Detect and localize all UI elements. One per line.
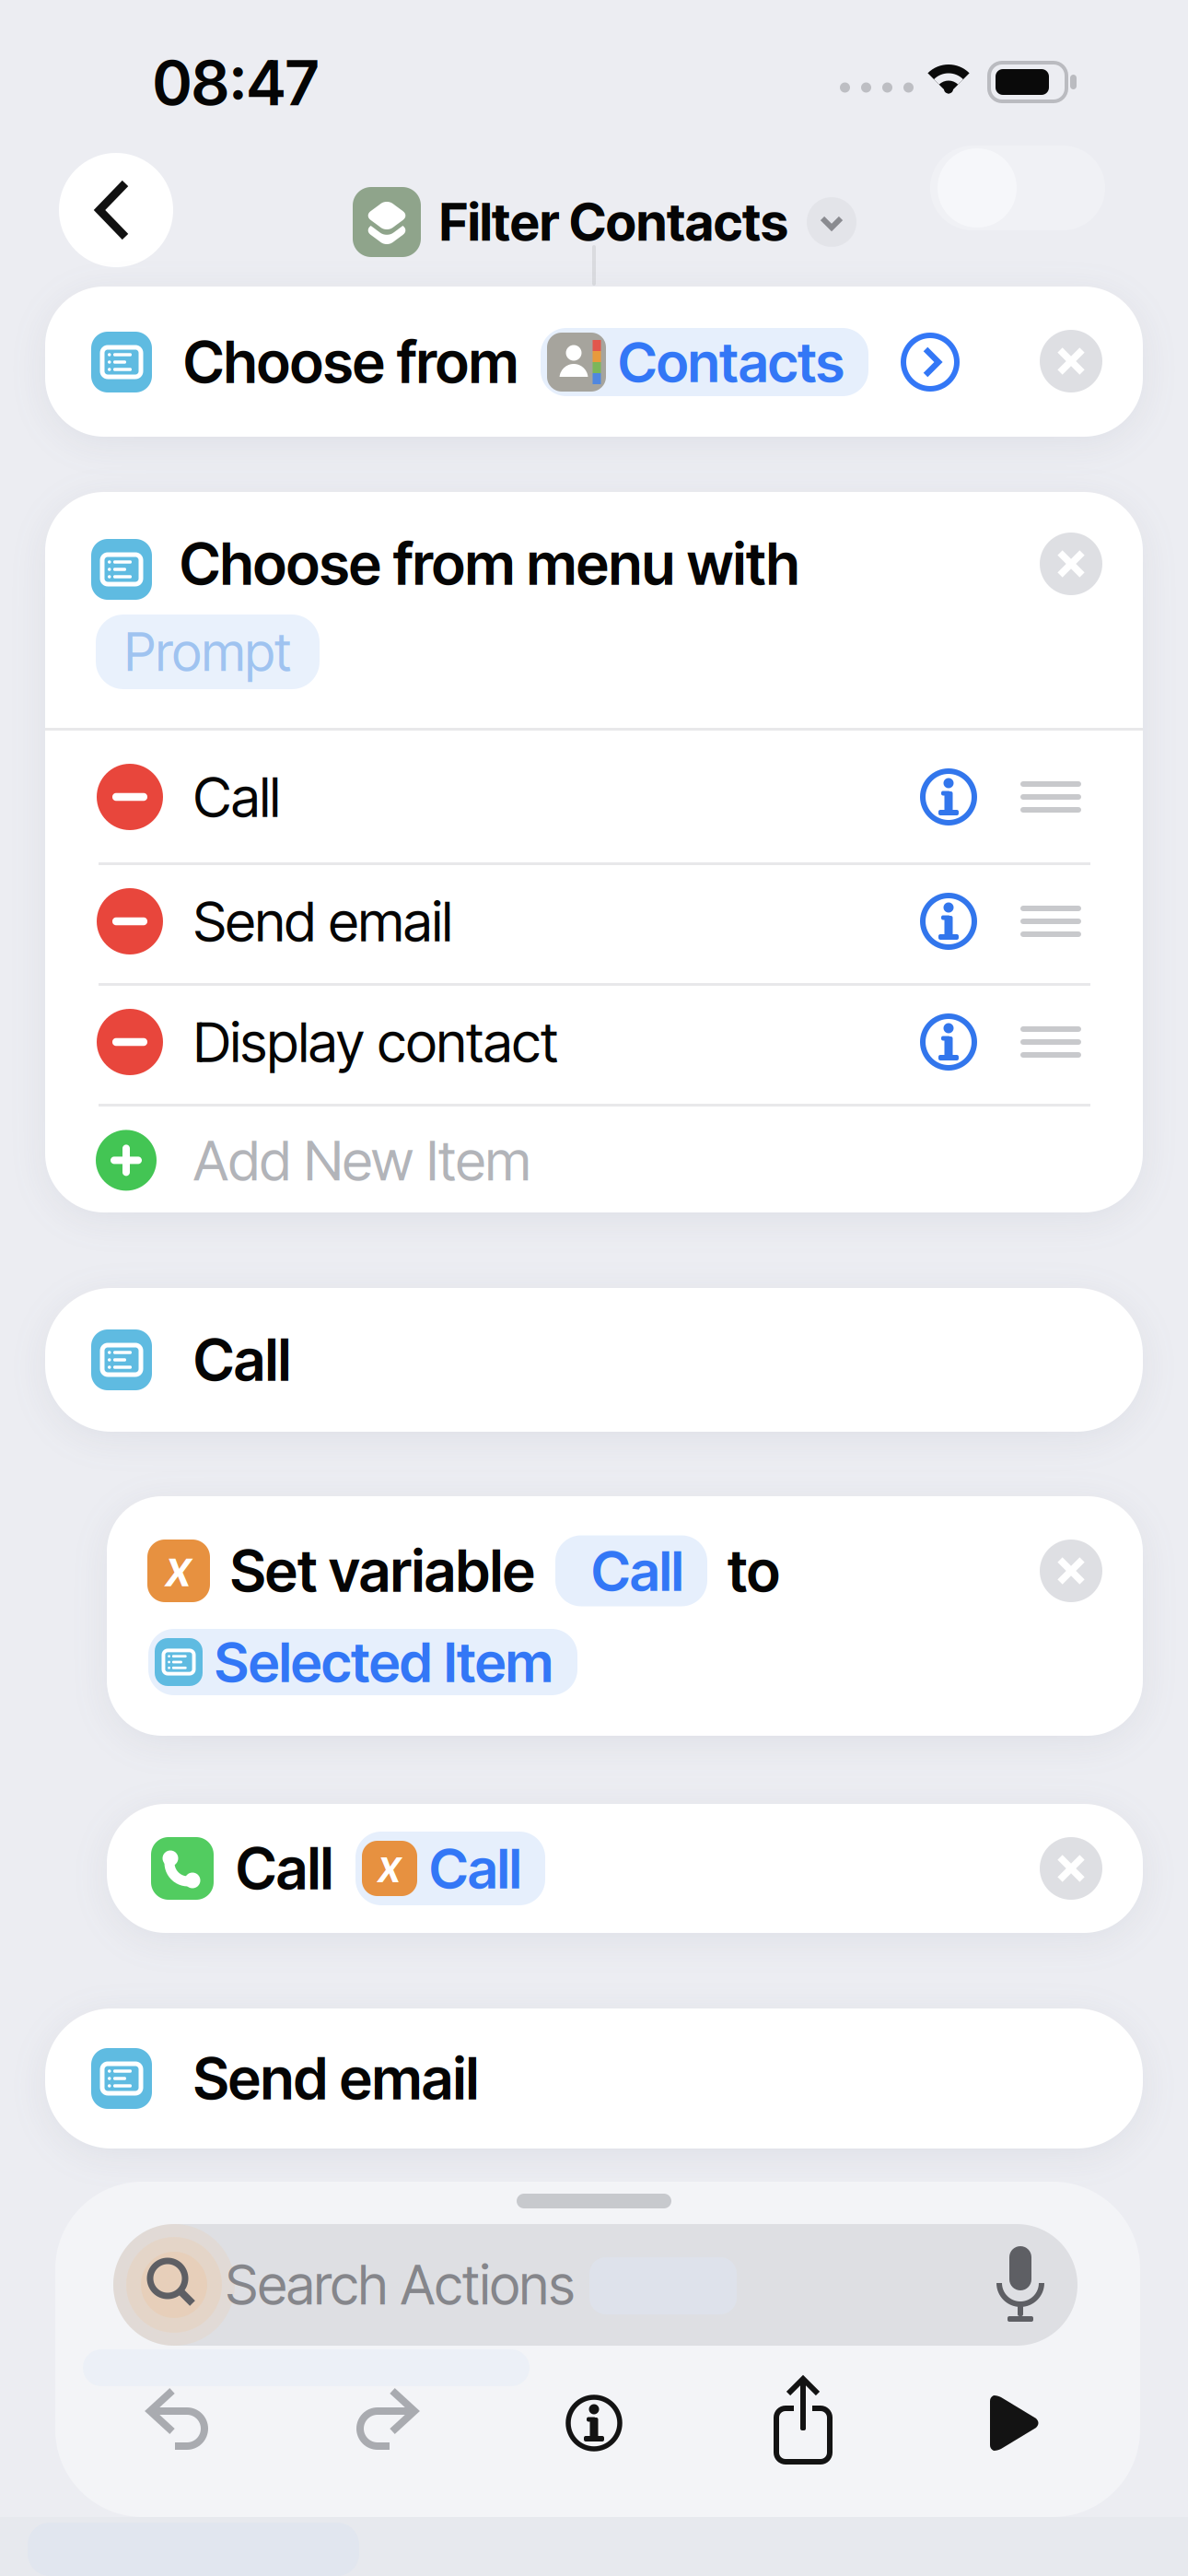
button[interactable]: Reorder [1020,781,1081,813]
staticText: Send email [193,2044,479,2112]
staticText: 08:47 [153,47,319,119]
staticText: Call [193,764,280,830]
staticText: Contacts [618,329,844,395]
staticText: Selected Item [215,1629,553,1695]
button[interactable]: Call variable [355,1832,545,1905]
button[interactable]: Set variable action [107,1496,1143,1736]
button[interactable]: Info [920,768,977,825]
button[interactable]: Reorder [1020,906,1081,937]
staticText: Call [591,1538,683,1603]
button[interactable]: Show Info [565,2395,623,2452]
staticText: Filter Contacts [439,192,788,253]
staticText: Call [236,1834,333,1902]
button[interactable]: Delete Action [1040,533,1102,595]
staticText: Choose from [183,328,518,396]
staticText: Add New Item [193,1128,530,1193]
staticText: Choose from menu with [180,530,799,598]
staticText: Call [193,1326,291,1394]
button[interactable]: Info [920,1013,977,1071]
button[interactable]: Send email [45,2008,1143,2149]
button[interactable]: Share [774,2377,833,2465]
button[interactable]: Info [920,893,977,950]
staticText: Display contact [193,1009,558,1075]
button[interactable]: Undo [139,2386,222,2460]
button[interactable]: Contacts [541,328,868,396]
staticText: to [728,1537,780,1605]
staticText: Call [429,1836,521,1901]
staticText: x [378,1839,401,1893]
button[interactable]: Remove Item [97,888,163,954]
button[interactable]: Call variable [555,1535,707,1606]
button[interactable]: Redo [343,2386,425,2460]
button[interactable]: Search Actions [113,2224,1077,2346]
button[interactable]: Shortcut Title Menu [353,187,856,257]
button[interactable]: Call action [107,1804,1143,1933]
button[interactable]: Choose from Contacts action [45,287,1143,437]
button[interactable]: Back [59,153,173,267]
button[interactable]: Selected Item [148,1629,577,1695]
staticText: Search Actions [226,2253,575,2317]
button[interactable]: Delete Action [1040,330,1102,392]
button[interactable]: Run Shortcut [990,2395,1041,2451]
staticText: x [166,1539,192,1598]
staticText: Send email [193,889,452,954]
button[interactable]: Expand [902,334,959,391]
button[interactable]: Prompt [96,615,320,689]
button[interactable]: Call [45,1288,1143,1432]
button[interactable]: Remove Item [97,1009,163,1075]
button[interactable]: Delete Action [1040,1837,1102,1900]
button[interactable]: Add New Item [96,1128,530,1193]
staticText: Prompt [124,621,291,683]
button[interactable]: Delete Action [1040,1540,1102,1602]
staticText: Set variable [230,1537,535,1605]
button[interactable]: Reorder [1020,1026,1081,1058]
button[interactable]: Remove Item [97,764,163,830]
